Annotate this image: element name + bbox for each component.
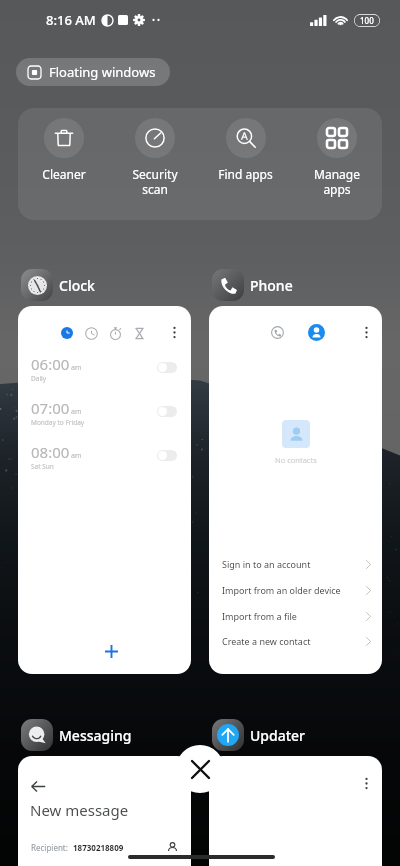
button[interactable]: Phone: [209, 268, 293, 302]
button[interactable]: More options: [360, 326, 373, 339]
button[interactable]: Dialer: [271, 326, 284, 339]
button[interactable]: Sign in to an account: [222, 551, 371, 577]
button[interactable]: More options: [360, 777, 373, 790]
staticText: Import from a file: [222, 610, 297, 622]
button[interactable]: Updater: [209, 718, 306, 752]
button[interactable]: Back: [18, 756, 191, 866]
button[interactable]: Manage apps: [291, 108, 382, 220]
staticText: Sign in to an account: [222, 558, 311, 570]
button[interactable]: 07:00: [18, 398, 191, 438]
button[interactable]: Floating windows: [16, 58, 170, 86]
staticText: Recipient:: [31, 842, 68, 853]
staticText: Daily: [31, 374, 47, 383]
button[interactable]: Alarm: [61, 327, 73, 339]
staticText: Create a new contact: [222, 635, 311, 647]
staticText: Messaging: [59, 726, 132, 745]
staticText: am: [71, 407, 82, 417]
staticText: Cleaner: [42, 166, 86, 182]
staticText: Clock: [59, 276, 95, 295]
staticText: Updater: [250, 726, 306, 745]
staticText: 08:00: [31, 442, 70, 462]
staticText: Find apps: [218, 166, 273, 182]
staticText: Phone: [250, 276, 293, 295]
button[interactable]: Back: [31, 779, 46, 794]
button[interactable]: Toggle alarm: [157, 406, 177, 417]
staticText: 8:16 AM: [46, 11, 96, 29]
button[interactable]: More options: [168, 326, 181, 339]
staticText: New message: [30, 800, 129, 820]
button[interactable]: Toggle alarm: [157, 362, 177, 373]
staticText: Sat Sun: [31, 462, 54, 471]
staticText: No contacts: [275, 455, 317, 465]
staticText: Monday to Friday: [31, 418, 85, 427]
staticText: am: [71, 363, 82, 373]
staticText: Floating windows: [49, 63, 156, 81]
staticText: Manage apps: [314, 166, 360, 197]
staticText: Security scan: [132, 166, 178, 197]
button[interactable]: Messaging: [18, 718, 132, 752]
button[interactable]: Find apps: [200, 108, 291, 220]
button[interactable]: 06:00: [18, 354, 191, 394]
staticText: 18730218809: [73, 842, 124, 853]
button[interactable]: More options: [209, 756, 382, 866]
button[interactable]: Contacts: [308, 324, 325, 341]
button[interactable]: Tab: [133, 327, 146, 340]
staticText: 100: [360, 15, 374, 26]
button[interactable]: Create a new contact: [222, 628, 371, 654]
button[interactable]: 08:00: [18, 442, 191, 482]
staticText: Import from an older device: [222, 584, 341, 596]
button[interactable]: Alarm: [18, 306, 191, 674]
staticText: 06:00: [31, 354, 70, 374]
button[interactable]: Import from a file: [222, 603, 371, 629]
button[interactable]: Clock: [18, 268, 95, 302]
staticText: 07:00: [31, 398, 70, 418]
button[interactable]: Toggle alarm: [157, 450, 177, 461]
button[interactable]: Tab: [109, 327, 122, 340]
button[interactable]: Dialer: [209, 306, 382, 674]
button[interactable]: Add alarm: [91, 631, 131, 671]
button[interactable]: Import from an older device: [222, 577, 371, 603]
button[interactable]: Close all apps: [176, 745, 224, 793]
button[interactable]: Cleaner: [18, 108, 109, 220]
button[interactable]: Tab: [85, 327, 98, 340]
staticText: am: [71, 451, 82, 461]
button[interactable]: Security scan: [109, 108, 200, 220]
